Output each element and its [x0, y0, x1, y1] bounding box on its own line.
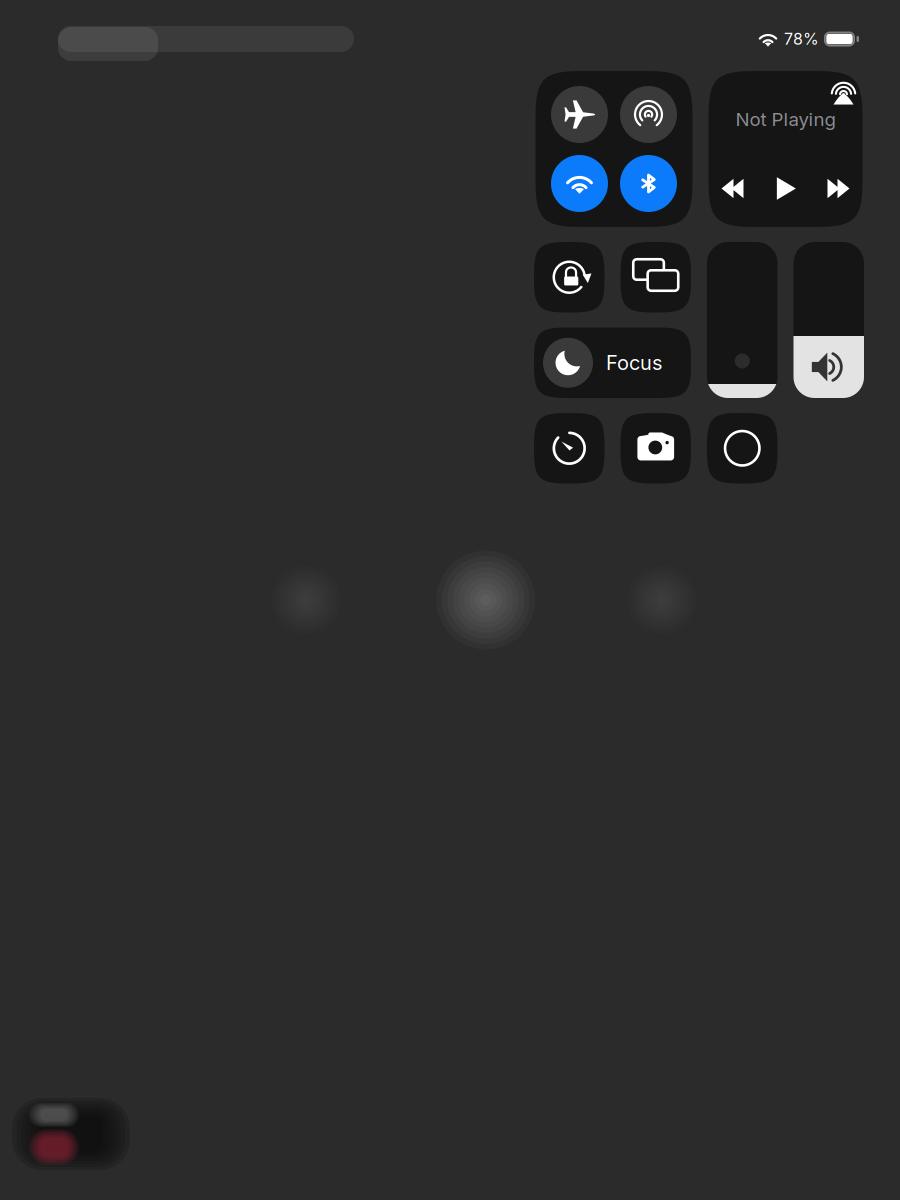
button[interactable]: Focus — [534, 327, 691, 398]
staticText: 78% — [784, 29, 819, 49]
button[interactable]: AirDrop — [620, 86, 677, 143]
button[interactable]: Rewind — [719, 177, 745, 199]
button[interactable]: Screen Mirroring — [620, 242, 691, 312]
button[interactable]: Camera — [620, 413, 691, 483]
button[interactable]: AirPlay — [830, 79, 856, 105]
button[interactable]: Timer — [534, 413, 604, 483]
button[interactable]: Volume — [793, 242, 864, 398]
button[interactable]: Wi-Fi — [551, 155, 608, 212]
button[interactable]: Rotation Lock — [534, 242, 604, 312]
button[interactable]: Airplane Mode — [551, 86, 608, 143]
button[interactable]: Fast Forward — [825, 177, 851, 199]
staticText: Not Playing — [735, 108, 835, 131]
button[interactable]: Bluetooth — [620, 155, 677, 212]
button[interactable]: Flashlight — [707, 413, 777, 483]
button[interactable]: Brightness — [707, 242, 777, 398]
staticText: Focus — [606, 351, 662, 375]
button[interactable]: Play — [773, 176, 797, 201]
